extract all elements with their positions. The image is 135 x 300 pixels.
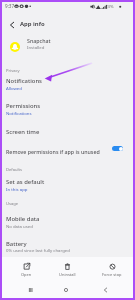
button[interactable]: Battery [2, 233, 133, 255]
staticText: Usage [6, 201, 19, 207]
staticText: App info [20, 20, 45, 28]
button[interactable]: Mobile data [2, 208, 133, 231]
button[interactable]: Remove permissions if app is unused [2, 141, 133, 159]
staticText: 9:37 [5, 3, 15, 9]
staticText: Battery [6, 240, 27, 248]
staticText: Notifications [6, 110, 32, 116]
button[interactable]: Back [5, 18, 18, 31]
staticText: Defaults [6, 167, 23, 173]
staticText: Installed [27, 44, 45, 50]
staticText: 73% [105, 3, 114, 9]
button[interactable]: Back [98, 283, 112, 297]
staticText: No data used [6, 223, 33, 229]
staticText: Force stop [102, 272, 122, 277]
staticText: Notifications [6, 77, 42, 85]
staticText: Permissions [6, 102, 41, 110]
button[interactable]: Uninstall [51, 259, 83, 281]
staticText: Open [21, 272, 32, 277]
button[interactable]: Snapchat [2, 34, 133, 56]
staticText: Allowed [6, 85, 22, 91]
staticText: Uninstall [59, 272, 76, 277]
staticText: Screen time [6, 128, 40, 136]
staticText: In this app [6, 186, 28, 192]
staticText: Mobile data [6, 215, 40, 223]
staticText: Set as default [6, 178, 45, 186]
button[interactable]: Recent apps [23, 283, 37, 297]
staticText: Remove permissions if app is unused [6, 148, 100, 155]
button[interactable]: Open [10, 259, 42, 281]
staticText: 0% used since last fully charged [6, 247, 70, 253]
staticText: Snapchat [27, 37, 51, 44]
button[interactable]: Set as default [2, 171, 133, 194]
button[interactable]: Screen time [2, 121, 133, 139]
button[interactable]: Notifications [2, 70, 133, 93]
button[interactable]: Force stop [96, 259, 128, 281]
button[interactable]: Permissions [2, 95, 133, 118]
staticText: Privacy [6, 68, 20, 74]
button[interactable]: Home [59, 283, 73, 297]
